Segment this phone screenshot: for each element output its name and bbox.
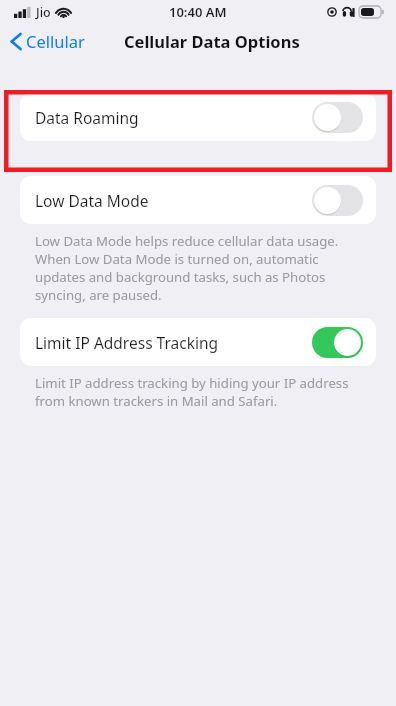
button[interactable]: Low Data Mode off: [312, 185, 363, 216]
button[interactable]: Limit IP Address Tracking on: [312, 327, 363, 358]
staticText: Low Data Mode helps reduce cellular data…: [35, 232, 366, 304]
button[interactable]: Data Roaming: [20, 93, 376, 141]
staticText: Limit IP address tracking by hiding your…: [35, 374, 366, 410]
button[interactable]: Low Data Mode: [20, 176, 376, 224]
staticText: Cellular: [26, 30, 85, 52]
button[interactable]: Cellular: [0, 26, 93, 56]
staticText: Limit IP Address Tracking: [35, 332, 312, 353]
staticText: Jio: [36, 4, 51, 21]
staticText: Low Data Mode: [35, 190, 312, 211]
button[interactable]: Data Roaming off: [312, 102, 363, 133]
button[interactable]: Limit IP Address Tracking: [20, 318, 376, 366]
staticText: 10:40 AM: [169, 3, 227, 21]
staticText: Data Roaming: [35, 107, 312, 128]
staticText: Cellular Data Options: [124, 30, 300, 52]
